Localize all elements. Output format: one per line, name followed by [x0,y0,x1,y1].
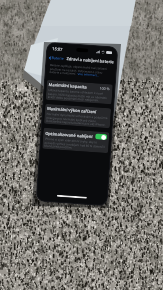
button[interactable]: Maximální kapacita [46,80,113,104]
button[interactable]: Back to Baterie [48,55,65,61]
button[interactable]: Více informací… [77,72,100,77]
staticText: 15:07 [52,46,63,52]
button[interactable]: Optimalizované nabíjení [42,128,109,153]
staticText: iPhone si zjistí vaše denní zvyky, aby t… [44,137,107,151]
staticText: baterie a nastavení. [49,70,78,76]
button[interactable]: iPhone battery health screen [37,43,117,205]
staticText: Maximální výkon zařízení [47,106,97,114]
button[interactable]: Optimalizované nabíjení toggle [95,133,107,140]
staticText: Baterie zajišťuje, abyste mohli své zaří… [50,63,112,74]
button[interactable]: Maximální výkon zařízení [44,104,111,128]
staticText: Maximální kapacita [48,82,88,90]
staticText: Udává kapacitu baterie vzhledem k nové b… [48,88,110,102]
staticText: Normální dynamické uchovávání a podpůrná… [46,112,109,126]
staticText: Baterie [51,55,65,61]
staticText: Optimalizované nabíjení [45,131,93,139]
staticText: 100 % [99,85,111,91]
staticText: Zdraví a nabíjení baterie [66,56,115,64]
